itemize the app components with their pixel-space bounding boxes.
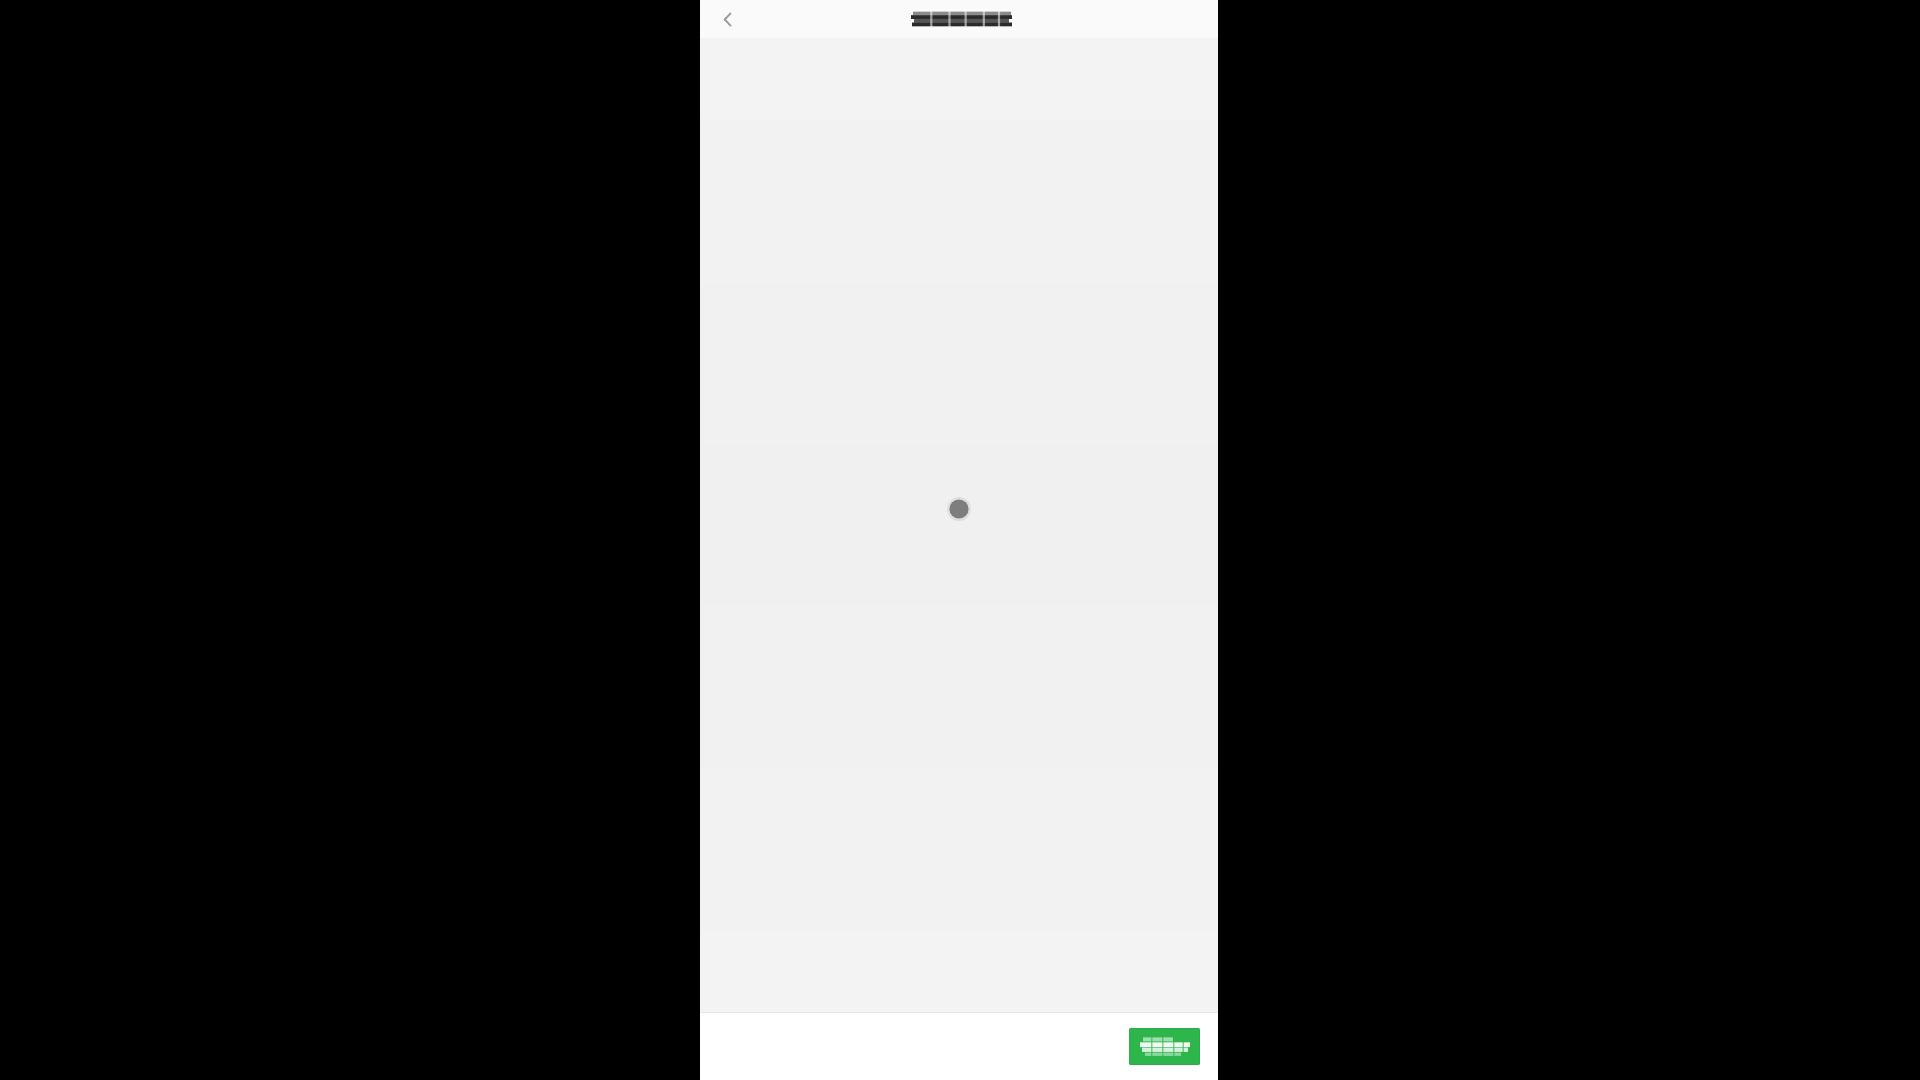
button[interactable]: Primary action	[1129, 1028, 1200, 1065]
button[interactable]: Back	[711, 2, 746, 37]
